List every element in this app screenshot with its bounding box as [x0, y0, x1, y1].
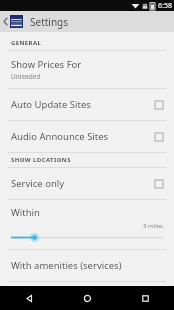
- button[interactable]: Navigate up: [0, 11, 25, 32]
- staticText: Settings: [30, 15, 69, 29]
- button[interactable]: Within: [0, 200, 174, 249]
- staticText: Service only: [11, 177, 155, 190]
- button[interactable]: Recent apps: [116, 286, 174, 310]
- staticText: Within: [11, 206, 40, 219]
- button[interactable]: Home: [58, 286, 116, 310]
- staticText: SHOW LOCATIONS: [11, 156, 71, 164]
- button[interactable]: Audio Announce Sites: [0, 121, 174, 152]
- staticText: Show Prices For: [11, 58, 82, 71]
- button[interactable]: Service only: [0, 168, 174, 199]
- button[interactable]: Show Prices For: [0, 51, 174, 88]
- staticText: Auto Update Sites: [11, 98, 155, 111]
- staticText: Unleaded: [11, 72, 41, 81]
- staticText: With amenities (services): [11, 259, 122, 272]
- staticText: 3 miles: [143, 222, 163, 230]
- staticText: Audio Announce Sites: [11, 130, 155, 143]
- staticText: 6:58: [158, 1, 172, 11]
- button[interactable]: Auto Update Sites: [0, 89, 174, 120]
- button[interactable]: With amenities (services): [0, 250, 174, 281]
- staticText: GENERAL: [11, 39, 42, 47]
- button[interactable]: Back: [0, 286, 58, 310]
